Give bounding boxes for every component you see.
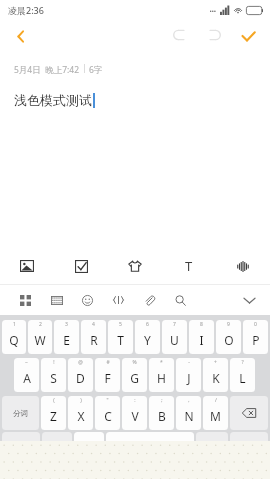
staticText: , [188, 397, 190, 404]
staticText: A [23, 370, 31, 386]
button[interactable]: ! [41, 358, 66, 392]
staticText: D [76, 370, 85, 386]
staticText: F [104, 370, 111, 386]
staticText: 凌晨2:36 [8, 4, 44, 16]
staticText: " [106, 397, 109, 404]
staticText: ( [53, 397, 55, 404]
button[interactable]: / [203, 396, 228, 430]
staticText: P [252, 332, 260, 348]
staticText: ; [161, 397, 163, 404]
button[interactable]: ) [68, 396, 93, 430]
button[interactable]: Checklist [54, 248, 108, 284]
button[interactable]: @ [68, 358, 93, 392]
staticText: @ [78, 359, 83, 366]
button[interactable]: Clipboard [103, 285, 134, 315]
button[interactable]: Redo [200, 22, 228, 50]
staticText: 5月4日 晚上7:42 [14, 64, 80, 76]
button[interactable]: , [176, 396, 201, 430]
button[interactable]: Emoji [72, 285, 103, 315]
staticText: # [106, 359, 110, 366]
staticText: B [158, 408, 166, 424]
button[interactable]: Text format [162, 248, 216, 284]
staticText: 浅色模式测试 [14, 92, 92, 108]
staticText: V [131, 408, 139, 424]
button[interactable]: 8 [189, 320, 214, 354]
button[interactable]: + [203, 358, 228, 392]
staticText: ) [80, 397, 82, 404]
button[interactable]: % [122, 358, 147, 392]
staticText: E [63, 332, 70, 348]
staticText: ! [53, 359, 55, 366]
button[interactable]: Delete [230, 396, 268, 430]
staticText: K [212, 370, 220, 386]
staticText: G [130, 370, 139, 386]
staticText: N [184, 408, 194, 424]
button[interactable]: Attach [134, 285, 165, 315]
staticText: ~ [25, 359, 28, 366]
button[interactable]: : [122, 396, 147, 430]
button[interactable]: ~ [14, 358, 39, 392]
button[interactable]: Back [6, 21, 36, 51]
button[interactable]: ( [41, 396, 66, 430]
staticText: + [214, 359, 217, 366]
button[interactable]: Keyboard layout [41, 285, 72, 315]
button[interactable]: Search [165, 285, 196, 315]
staticText: ? [241, 359, 244, 366]
button[interactable]: Style [108, 248, 162, 284]
staticText: C [104, 408, 112, 424]
staticText: L [239, 370, 246, 386]
staticText: 6字 [89, 64, 103, 76]
button[interactable]: Key [74, 432, 104, 441]
staticText: % [132, 359, 137, 366]
button[interactable]: 2 [28, 320, 52, 354]
button[interactable]: 6 [135, 320, 160, 354]
button[interactable]: 9 [216, 320, 241, 354]
staticText: 2 [39, 321, 42, 328]
button[interactable]: Insert image [0, 248, 54, 284]
staticText: / [215, 397, 217, 404]
button[interactable]: 1 [2, 320, 26, 354]
button[interactable]: ; [149, 396, 174, 430]
staticText: : [134, 397, 136, 404]
button[interactable]: 3 [54, 320, 79, 354]
button[interactable]: Done [234, 22, 262, 50]
button[interactable]: 0 [243, 320, 268, 354]
staticText: 7 [173, 321, 176, 328]
staticText: H [157, 370, 166, 386]
button[interactable]: " [95, 396, 120, 430]
staticText: R [90, 332, 98, 348]
staticText: S [50, 370, 57, 386]
staticText: 4 [92, 321, 95, 328]
button[interactable]: Undo [166, 22, 194, 50]
staticText: 1 [13, 321, 16, 328]
staticText: * [160, 359, 163, 366]
button[interactable]: 5 [108, 320, 133, 354]
staticText: Z [50, 408, 57, 424]
staticText: W [34, 332, 46, 348]
staticText: - [188, 359, 190, 366]
button[interactable]: 4 [81, 320, 106, 354]
button[interactable]: Hide keyboard [236, 287, 262, 313]
staticText: O [224, 332, 234, 348]
staticText: 分词 [13, 409, 28, 418]
staticText: 0 [254, 321, 257, 328]
button[interactable]: * [149, 358, 174, 392]
staticText: 5 [119, 321, 122, 328]
button[interactable]: - [176, 358, 201, 392]
staticText: Y [144, 332, 151, 348]
button[interactable]: Voice [216, 248, 270, 284]
staticText: M [210, 408, 221, 424]
staticText: J [187, 370, 191, 386]
staticText: U [170, 332, 179, 348]
button[interactable]: ? [230, 358, 255, 392]
button[interactable]: # [95, 358, 120, 392]
staticText: 8 [200, 321, 203, 328]
button[interactable]: Panel [10, 285, 41, 315]
button[interactable]: 7 [162, 320, 187, 354]
button[interactable]: 分词 [2, 396, 39, 430]
